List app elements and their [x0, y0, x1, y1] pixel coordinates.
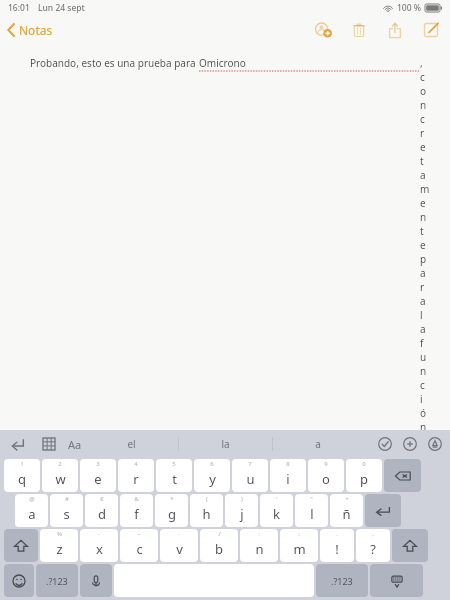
staticText: m	[293, 540, 306, 558]
button[interactable]: 7	[232, 459, 268, 492]
button[interactable]: 2	[42, 459, 78, 492]
button[interactable]: .	[320, 529, 354, 562]
staticText: ,	[372, 530, 374, 538]
button[interactable]: Table	[40, 435, 58, 453]
button[interactable]: "	[295, 494, 328, 527]
staticText: .?123	[331, 575, 353, 587]
button[interactable]: –	[120, 529, 158, 562]
staticText: +	[345, 495, 349, 503]
staticText: 8	[286, 460, 290, 468]
button[interactable]: Hide keyboard	[370, 564, 423, 597]
button[interactable]: .?123	[316, 564, 368, 597]
button[interactable]: @	[15, 494, 48, 527]
button[interactable]: *	[155, 494, 188, 527]
button[interactable]: Emoji	[4, 564, 34, 597]
staticText: q	[18, 470, 26, 488]
button[interactable]: €	[85, 494, 118, 527]
staticText: o	[322, 470, 330, 488]
staticText: &	[134, 495, 139, 503]
staticText: 16:01	[8, 2, 30, 14]
button[interactable]: la	[179, 430, 272, 458]
button[interactable]: ,	[356, 529, 390, 562]
button[interactable]: .?123	[36, 564, 78, 597]
staticText: 2	[58, 460, 62, 468]
button[interactable]: 3	[80, 459, 116, 492]
button[interactable]: 6	[194, 459, 230, 492]
staticText: #	[65, 495, 69, 503]
button[interactable]: Add	[401, 435, 419, 453]
button[interactable]: Notas	[0, 18, 59, 42]
staticText: a	[28, 505, 36, 523]
button[interactable]: 1	[4, 459, 40, 492]
button[interactable]: Aa	[66, 435, 84, 454]
staticText: ñ	[342, 505, 351, 523]
staticText: r	[133, 470, 139, 488]
button[interactable]: Compose	[420, 19, 442, 41]
button[interactable]: Add person	[312, 19, 334, 41]
button[interactable]: Undo	[8, 435, 26, 453]
staticText: /	[218, 530, 221, 538]
staticText: b	[215, 540, 223, 558]
button[interactable]: #	[50, 494, 83, 527]
staticText: 7	[248, 460, 252, 468]
button[interactable]: &	[120, 494, 153, 527]
button[interactable]: Confirm	[376, 435, 394, 453]
staticText: ?	[370, 540, 376, 558]
staticText: l	[310, 505, 314, 523]
staticText: 100 %	[397, 2, 422, 14]
button[interactable]: 4	[118, 459, 154, 492]
staticText: e	[94, 470, 102, 488]
button[interactable]: el	[84, 430, 178, 458]
button[interactable]: '	[260, 494, 293, 527]
button[interactable]: +	[330, 494, 363, 527]
button[interactable]: :	[240, 529, 278, 562]
staticText: Probando, esto es una prueba para	[30, 56, 199, 70]
button[interactable]: Shift	[392, 529, 428, 562]
staticText: v	[176, 540, 183, 558]
staticText: j	[240, 505, 244, 523]
button[interactable]: 8	[270, 459, 306, 492]
staticText: x	[96, 540, 103, 558]
staticText: %	[57, 530, 62, 538]
staticText: c	[136, 540, 143, 558]
button[interactable]: ;	[280, 529, 318, 562]
staticText: .?123	[46, 575, 68, 587]
staticText: .	[336, 530, 338, 538]
staticText: €	[100, 495, 104, 503]
staticText: 5	[172, 460, 176, 468]
staticText: ·	[178, 530, 180, 538]
staticText: (	[206, 495, 208, 503]
staticText: 6	[210, 460, 214, 468]
staticText: 9	[324, 460, 328, 468]
staticText: trackpad. Vaya, me he dejado un espacio …	[30, 465, 269, 479]
button[interactable]: ·	[160, 529, 198, 562]
button[interactable]: (	[190, 494, 223, 527]
button[interactable]: Draw	[426, 435, 444, 453]
button[interactable]: a	[273, 430, 363, 458]
button[interactable]: /	[200, 529, 238, 562]
button[interactable]: 9	[308, 459, 344, 492]
staticText: '	[276, 495, 278, 503]
button[interactable]: Share	[384, 19, 406, 41]
button[interactable]: Delete	[348, 19, 370, 41]
staticText: –	[137, 530, 141, 538]
button[interactable]: Dictation	[80, 564, 112, 597]
button[interactable]: )	[225, 494, 258, 527]
staticText: Aa	[68, 437, 82, 452]
button[interactable]: Backspace	[384, 459, 421, 492]
button[interactable]: Return	[365, 494, 401, 527]
button[interactable]: -	[80, 529, 118, 562]
staticText: !	[335, 540, 339, 558]
button[interactable]: Shift	[4, 529, 38, 562]
button[interactable]: 0	[346, 459, 382, 492]
staticText: el	[127, 437, 136, 451]
staticText: @	[29, 495, 35, 503]
staticText: d	[98, 505, 106, 523]
staticText: i	[286, 470, 290, 488]
button[interactable]: %	[40, 529, 78, 562]
staticText: -	[98, 530, 100, 538]
staticText: )	[241, 495, 243, 503]
staticText: "	[310, 495, 313, 503]
button[interactable]: 5	[156, 459, 192, 492]
